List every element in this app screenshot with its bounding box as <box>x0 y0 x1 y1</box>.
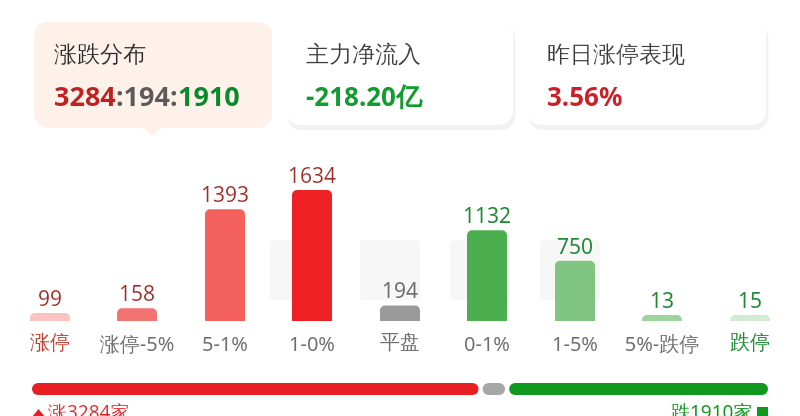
button[interactable]: 0-1% <box>432 330 542 357</box>
staticText: 跌1910家 <box>671 399 753 416</box>
other: 涨跌比例 <box>32 383 768 395</box>
button[interactable]: 涨跌分布 <box>34 22 272 128</box>
staticText: 194 <box>355 276 445 305</box>
staticText: 1634 <box>267 161 357 190</box>
staticText: -218.20亿 <box>306 78 422 114</box>
staticText: 跌停 <box>695 330 800 355</box>
button[interactable]: 涨停 <box>0 330 105 355</box>
staticText: 昨日涨停表现 <box>547 40 685 69</box>
staticText: 15 <box>705 286 795 315</box>
button[interactable]: 5%-跌停 <box>607 330 717 357</box>
staticText: 1393 <box>180 180 270 209</box>
button[interactable]: 1-0% <box>257 330 367 357</box>
staticText: 主力净流入 <box>306 40 421 69</box>
button[interactable]: 5-1% <box>170 330 280 357</box>
staticText: 1-5% <box>520 330 630 357</box>
staticText: 13 <box>617 286 707 315</box>
staticText: 158 <box>92 279 182 308</box>
staticText: 99 <box>5 284 95 313</box>
button[interactable]: 1-5% <box>520 330 630 357</box>
staticText: 3.56% <box>547 78 623 113</box>
button[interactable]: 涨停-5% <box>82 330 192 357</box>
staticText: 750 <box>530 232 620 261</box>
staticText: 5-1% <box>170 330 280 357</box>
staticText: :194: <box>116 77 178 114</box>
button[interactable]: 平盘 <box>345 330 455 355</box>
staticText: 涨停 <box>0 330 105 355</box>
staticText: 1910 <box>178 77 240 114</box>
button[interactable]: 跌停 <box>695 330 800 355</box>
staticText: 涨3284家 <box>48 399 130 416</box>
staticText: 1132 <box>442 201 532 230</box>
staticText: 1-0% <box>257 330 367 357</box>
staticText: 5%-跌停 <box>607 330 717 357</box>
staticText: 涨跌分布 <box>54 40 146 69</box>
staticText: 平盘 <box>345 330 455 355</box>
staticText: 3284 <box>54 77 116 114</box>
button[interactable]: 昨日涨停表现 <box>527 22 768 128</box>
staticText: 0-1% <box>432 330 542 357</box>
button[interactable]: 主力净流入 <box>286 22 515 128</box>
staticText: 涨停-5% <box>82 330 192 357</box>
